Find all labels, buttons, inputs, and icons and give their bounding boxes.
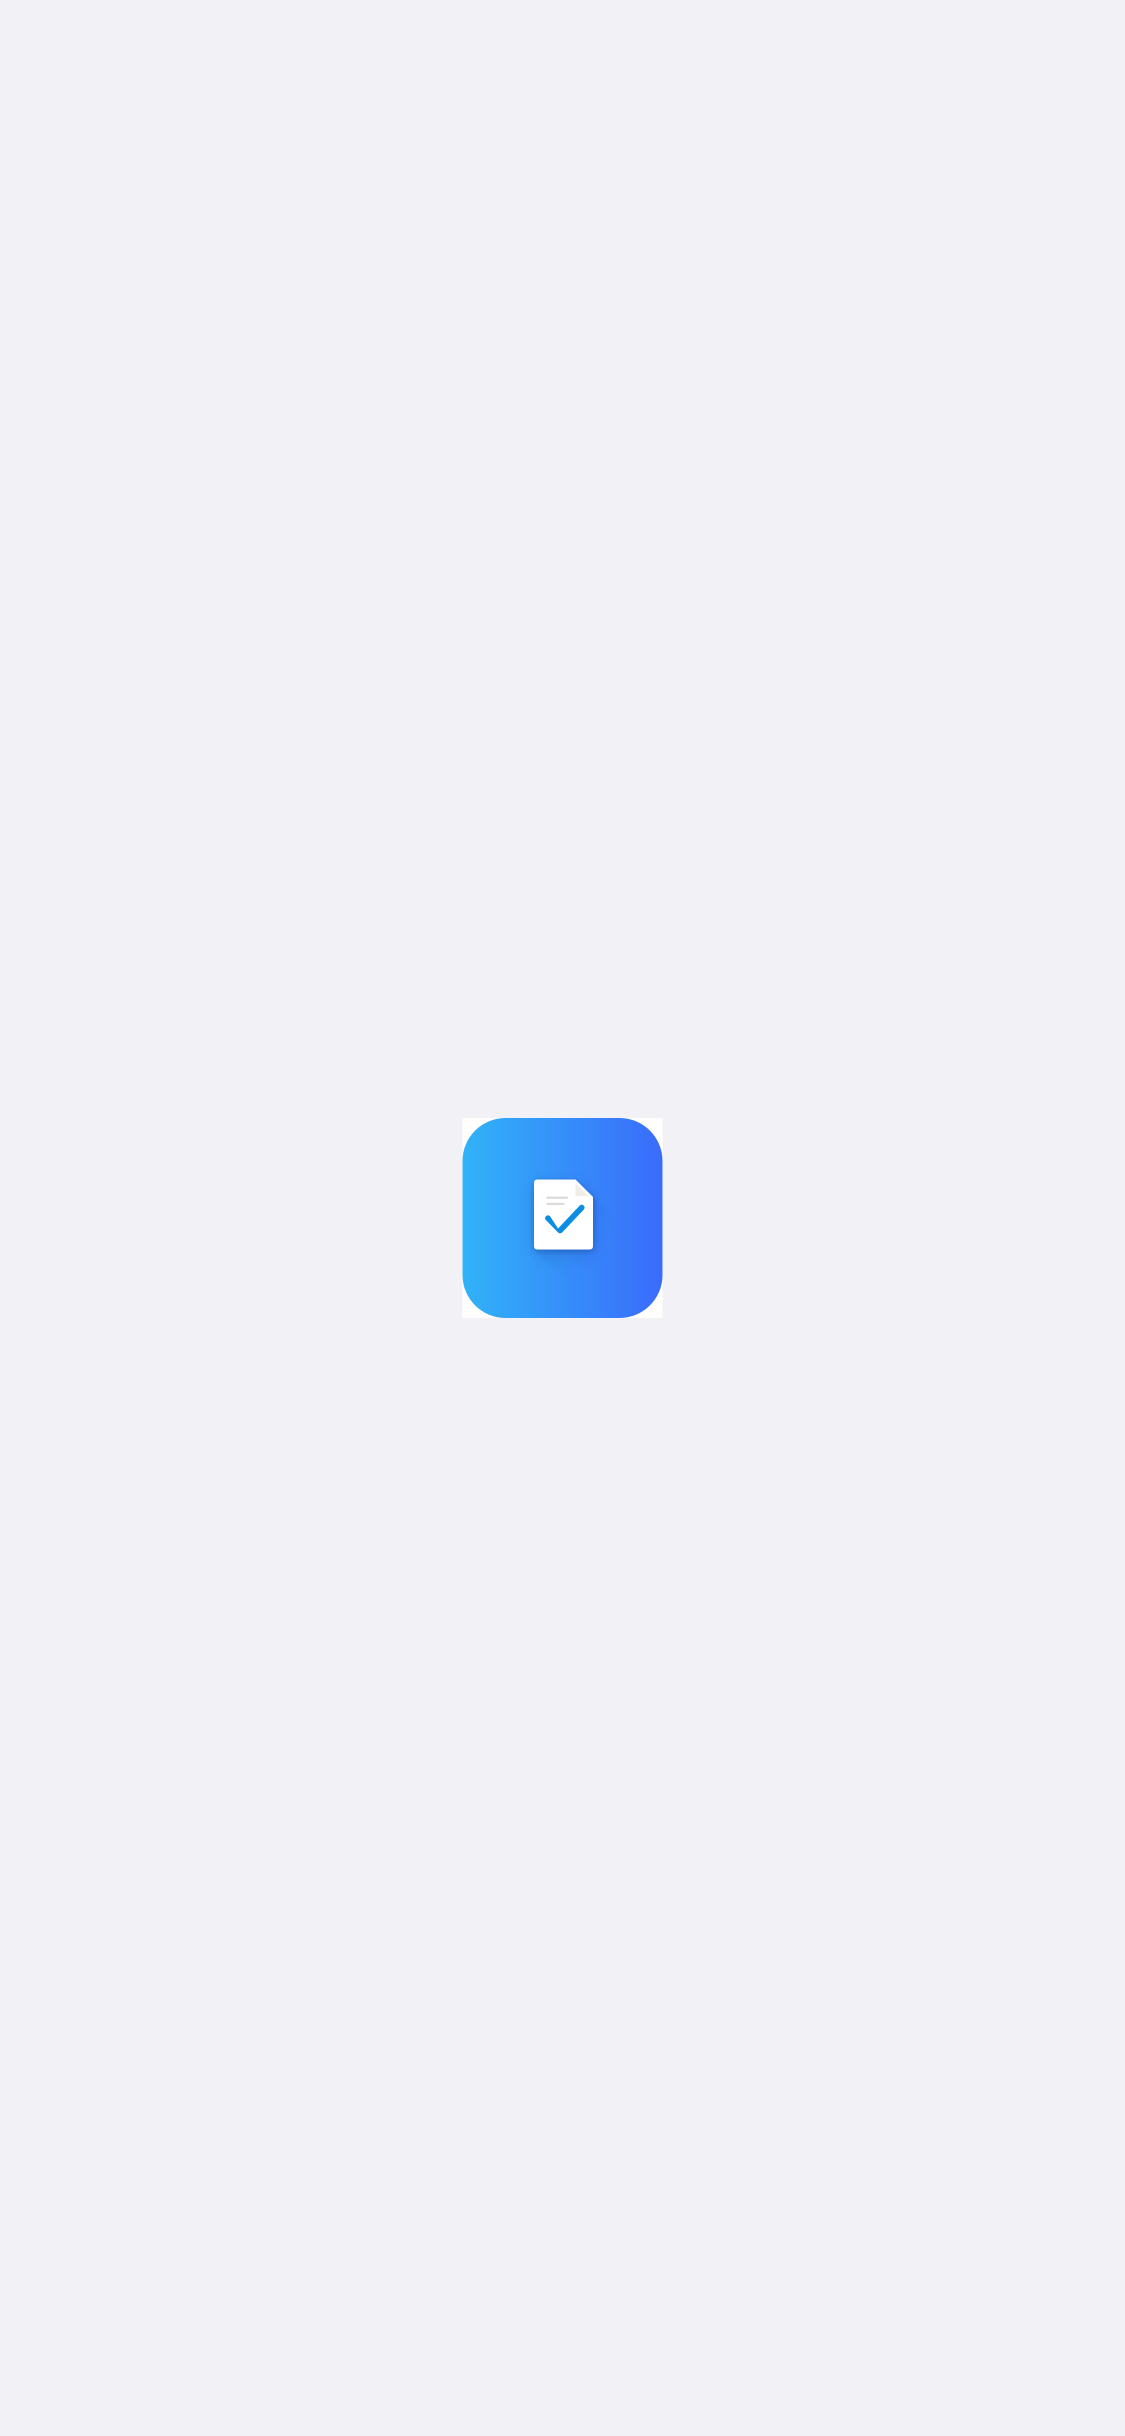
image: App icon: [462, 1118, 662, 1318]
